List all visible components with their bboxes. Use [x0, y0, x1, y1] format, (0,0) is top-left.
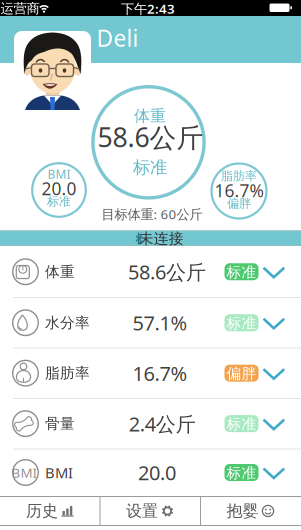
- staticText: 运营商: [0, 0, 39, 17]
- staticText: 水分率: [45, 314, 90, 332]
- button[interactable]: BMI: [0, 447, 301, 497]
- staticText: BMI: [45, 463, 73, 482]
- staticText: 58.6公斤: [97, 119, 203, 155]
- button[interactable]: 抱婴: [200, 496, 301, 526]
- staticText: BMI: [12, 464, 38, 481]
- staticText: 未连接: [139, 229, 184, 247]
- staticText: 骨量: [45, 415, 75, 433]
- button[interactable]: 水分率: [0, 298, 301, 348]
- staticText: 16.7%: [132, 360, 187, 386]
- staticText: 偏胖: [226, 365, 256, 383]
- button[interactable]: 未连接: [0, 230, 301, 246]
- button[interactable]: Profile: [14, 31, 91, 110]
- staticText: 历史: [26, 501, 58, 521]
- staticText: 57.1%: [132, 309, 187, 336]
- staticText: Deli: [96, 23, 138, 53]
- button[interactable]: 体重: [0, 247, 301, 297]
- staticText: 抱婴: [226, 501, 258, 521]
- staticText: 脂肪率: [221, 169, 257, 183]
- staticText: 体重: [45, 263, 75, 281]
- staticText: BMI: [47, 166, 70, 182]
- button[interactable]: 历史: [0, 496, 100, 526]
- button[interactable]: 骨量: [0, 399, 301, 449]
- button[interactable]: 设置: [100, 496, 200, 526]
- staticText: 16.7%: [214, 179, 263, 202]
- staticText: 目标体重: 60公斤: [101, 205, 202, 223]
- staticText: 偏胖: [227, 196, 251, 211]
- staticText: 标准: [226, 464, 256, 482]
- staticText: 设置: [126, 501, 158, 521]
- staticText: 58.6公斤: [128, 258, 206, 285]
- staticText: 标准: [226, 415, 256, 433]
- staticText: 20.0: [138, 459, 176, 486]
- staticText: 脂肪率: [45, 364, 90, 382]
- staticText: 标准: [133, 157, 167, 178]
- staticText: 标准: [226, 314, 256, 332]
- staticText: 标准: [226, 263, 256, 281]
- staticText: 标准: [47, 194, 71, 209]
- staticText: 2.4公斤: [129, 410, 196, 437]
- staticText: 下午2:43: [121, 0, 175, 17]
- staticText: 20.0: [41, 177, 76, 200]
- button[interactable]: 脂肪率: [0, 348, 301, 398]
- staticText: 体重: [134, 106, 166, 126]
